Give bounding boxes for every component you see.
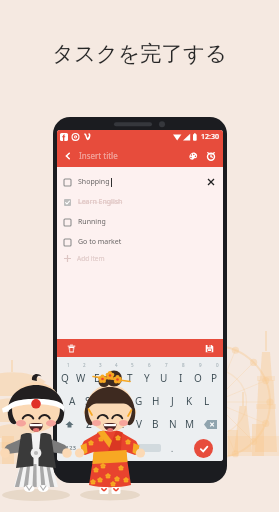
button[interactable]: Learn English (64, 192, 223, 212)
staticText: 4 (115, 362, 118, 368)
button[interactable]: K (181, 390, 198, 412)
staticText: Learn English (78, 197, 123, 207)
staticText: T (127, 371, 133, 385)
button[interactable]: J (164, 390, 181, 412)
button[interactable]: 9 (189, 362, 206, 390)
button[interactable]: Delete (64, 341, 78, 355)
button[interactable]: Z (81, 413, 97, 435)
staticText: J (171, 394, 174, 408)
staticText: タスクを完了する (52, 40, 228, 67)
staticText: Go to market (78, 237, 122, 247)
button[interactable]: 3 (89, 362, 105, 390)
button[interactable]: Running (64, 212, 223, 232)
staticText: W (76, 371, 86, 385)
button[interactable]: A (64, 390, 80, 412)
staticText: Insert title (79, 150, 118, 161)
staticText: 1 (67, 362, 70, 368)
staticText: 2 (83, 362, 86, 368)
button[interactable]: . (161, 435, 183, 461)
button[interactable]: G (130, 390, 147, 412)
staticText: Running (78, 217, 106, 227)
staticText: Y (144, 371, 150, 385)
staticText: E (94, 371, 100, 385)
staticText: A (69, 394, 76, 408)
button[interactable]: Shopping (64, 172, 223, 192)
staticText: Add item (77, 254, 105, 263)
button[interactable]: ?123 (57, 435, 81, 461)
staticText: M (185, 417, 195, 431)
button[interactable]: L (198, 390, 215, 412)
button[interactable]: 0 (206, 362, 223, 390)
staticText: N (169, 417, 177, 431)
button[interactable]: B (147, 413, 164, 435)
staticText: . (171, 443, 174, 454)
button[interactable]: X (97, 413, 113, 435)
button[interactable]: Space (81, 444, 161, 452)
button[interactable]: Shift (57, 413, 81, 435)
button[interactable]: Backspace (198, 413, 223, 435)
staticText: V (136, 417, 142, 431)
staticText: 8 (182, 362, 185, 368)
staticText: Z (86, 417, 92, 431)
staticText: O (194, 371, 202, 385)
staticText: S (85, 394, 91, 408)
button[interactable]: 5 (121, 362, 138, 390)
button[interactable]: Colour (186, 149, 200, 163)
button[interactable]: D (96, 390, 113, 412)
staticText: D (101, 394, 109, 408)
button[interactable]: Save (202, 341, 216, 355)
staticText: R (110, 371, 117, 385)
staticText: Shopping (78, 177, 110, 187)
button[interactable]: 6 (138, 362, 155, 390)
staticText: P (211, 371, 218, 385)
button[interactable]: N (164, 413, 181, 435)
staticText: ?123 (63, 444, 76, 452)
button[interactable]: Back (61, 149, 74, 162)
staticText: 3 (99, 362, 102, 368)
button[interactable]: 2 (73, 362, 89, 390)
button[interactable]: Enter (183, 435, 223, 461)
staticText: H (152, 394, 160, 408)
button[interactable]: 8 (172, 362, 189, 390)
button[interactable]: Reminder (204, 149, 218, 163)
staticText: U (160, 371, 168, 385)
button[interactable]: 7 (155, 362, 172, 390)
staticText: 7 (165, 362, 168, 368)
button[interactable]: C (113, 413, 130, 435)
staticText: 9 (199, 362, 202, 368)
button[interactable]: M (181, 413, 198, 435)
button[interactable]: S (80, 390, 96, 412)
button[interactable]: Go to market (64, 232, 223, 252)
staticText: Q (61, 371, 69, 385)
staticText: 12:30 (201, 132, 219, 142)
staticText: C (118, 417, 125, 431)
staticText: B (152, 417, 159, 431)
staticText: L (204, 394, 210, 408)
button[interactable]: Add item (64, 252, 105, 265)
staticText: 6 (148, 362, 151, 368)
button[interactable]: 1 (57, 362, 73, 390)
staticText: X (102, 417, 108, 431)
button[interactable]: Close (204, 175, 218, 189)
button[interactable]: H (147, 390, 164, 412)
staticText: 5 (131, 362, 134, 368)
staticText: 0 (216, 362, 219, 368)
staticText: K (186, 394, 193, 408)
staticText: F (119, 394, 125, 408)
staticText: G (135, 394, 143, 408)
button[interactable]: 4 (105, 362, 121, 390)
staticText: I (179, 371, 183, 385)
button[interactable]: V (130, 413, 147, 435)
button[interactable]: F (113, 390, 130, 412)
